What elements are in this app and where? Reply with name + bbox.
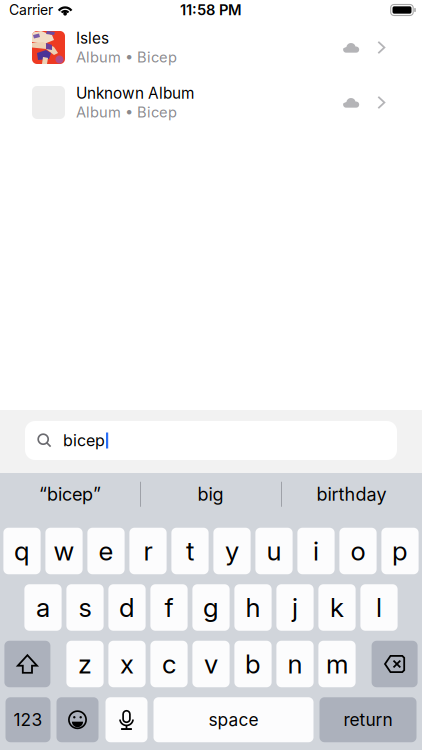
button[interactable]: [318, 584, 356, 631]
button[interactable]: [381, 528, 419, 574]
staticText: x: [120, 648, 134, 680]
staticText: n: [287, 648, 302, 680]
staticText: e: [98, 535, 113, 567]
staticText: space: [208, 709, 258, 730]
staticText: f: [164, 592, 173, 623]
button[interactable]: [234, 584, 272, 631]
button[interactable]: [3, 528, 41, 574]
button[interactable]: big: [140, 473, 281, 516]
staticText: r: [143, 535, 152, 567]
staticText: k: [330, 592, 344, 623]
staticText: birthday: [316, 483, 386, 505]
button[interactable]: [45, 528, 83, 574]
button[interactable]: [66, 584, 104, 631]
staticText: z: [78, 648, 92, 680]
staticText: d: [119, 592, 135, 623]
staticText: 11:58 PM: [180, 1, 242, 19]
button[interactable]: [276, 584, 314, 631]
button[interactable]: [171, 528, 209, 574]
button[interactable]: [339, 528, 377, 574]
button[interactable]: [297, 528, 335, 574]
staticText: Album • Bicep: [76, 103, 177, 121]
staticText: u: [266, 535, 281, 567]
button[interactable]: [108, 584, 146, 631]
button[interactable]: Emoji: [56, 697, 98, 742]
button[interactable]: Dictate: [105, 697, 147, 742]
staticText: h: [245, 592, 260, 623]
button[interactable]: [192, 641, 230, 687]
staticText: return: [343, 709, 392, 730]
button[interactable]: [150, 584, 188, 631]
staticText: g: [203, 592, 219, 623]
button[interactable]: Unknown Album: [0, 75, 422, 130]
staticText: w: [53, 535, 74, 567]
button[interactable]: [318, 641, 356, 687]
button[interactable]: [360, 584, 398, 631]
staticText: b: [245, 648, 261, 680]
staticText: Isles: [76, 29, 109, 47]
staticText: big: [197, 483, 223, 505]
staticText: v: [204, 648, 218, 680]
staticText: “bicep”: [39, 483, 101, 505]
button[interactable]: [24, 584, 62, 631]
button[interactable]: Isles: [0, 20, 422, 75]
staticText: t: [186, 535, 194, 567]
button[interactable]: Shift: [4, 641, 50, 687]
staticText: Carrier: [9, 1, 53, 18]
staticText: Album • Bicep: [76, 48, 177, 66]
staticText: Unknown Album: [76, 84, 194, 102]
button[interactable]: [192, 584, 230, 631]
button[interactable]: [276, 641, 314, 687]
staticText: p: [392, 535, 408, 567]
staticText: 123: [13, 709, 42, 730]
staticText: bicep: [63, 431, 105, 450]
staticText: m: [326, 648, 348, 680]
button[interactable]: [255, 528, 293, 574]
staticText: l: [376, 592, 382, 623]
button[interactable]: [153, 697, 313, 742]
button[interactable]: [150, 641, 188, 687]
button[interactable]: [129, 528, 167, 574]
staticText: y: [225, 535, 239, 567]
button[interactable]: Delete: [372, 641, 418, 687]
button[interactable]: birthday: [281, 473, 422, 516]
button[interactable]: [66, 641, 104, 687]
button[interactable]: Numbers and symbols: [5, 697, 50, 742]
button[interactable]: [87, 528, 125, 574]
staticText: q: [14, 535, 30, 567]
staticText: s: [78, 592, 91, 623]
staticText: c: [162, 648, 176, 680]
button[interactable]: “bicep”: [0, 473, 140, 516]
staticText: o: [350, 535, 365, 567]
button[interactable]: [234, 641, 272, 687]
button[interactable]: [108, 641, 146, 687]
button[interactable]: [213, 528, 251, 574]
staticText: j: [292, 592, 298, 623]
button[interactable]: [319, 697, 416, 742]
staticText: i: [313, 535, 319, 567]
staticText: a: [36, 592, 50, 623]
